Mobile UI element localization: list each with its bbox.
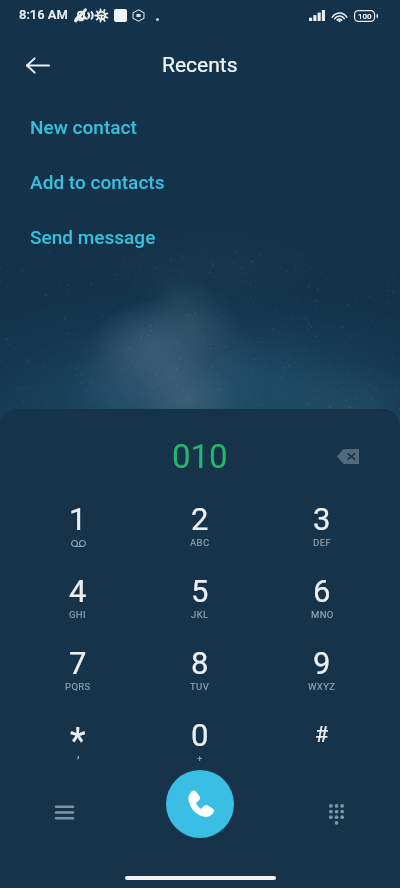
staticText: , [77,747,80,761]
staticText: Add to contacts [30,171,165,193]
staticText: # [315,722,329,747]
button[interactable]: Call [166,770,234,838]
staticText: 8 [191,645,209,681]
button[interactable]: Send message [0,209,400,264]
staticText: DEF [313,537,332,548]
button[interactable]: 7 [17,645,139,717]
staticText: ABC [190,537,210,548]
button[interactable]: New contact [0,99,400,154]
staticText: 0 [191,717,209,753]
button[interactable]: 0 [139,717,261,789]
staticText: PQRS [65,681,91,692]
staticText: 9 [313,645,331,681]
button[interactable]: 4 [17,573,139,645]
staticText: 5 [191,573,209,609]
staticText: 7 [69,645,87,681]
staticText: 6 [313,573,331,609]
staticText: 1 [69,501,87,537]
staticText: Recents [162,53,238,78]
staticText: * [70,720,86,762]
staticText: + [197,753,203,764]
staticText: GHI [69,609,87,620]
staticText: 4 [69,573,87,609]
staticText: 8:16 AM [19,7,68,22]
button[interactable]: Add to contacts [0,154,400,209]
staticText: WXYZ [308,681,336,692]
button[interactable]: 8 [139,645,261,717]
button[interactable]: * [17,717,139,789]
button[interactable]: Dialpad [314,791,358,835]
button[interactable]: 1 [17,501,139,573]
button[interactable]: 6 [261,573,383,645]
staticText: 100 [358,12,372,21]
button[interactable]: 5 [139,573,261,645]
button[interactable]: Call log [42,790,86,834]
staticText: Send message [30,226,156,248]
staticText: TUV [190,681,210,692]
button[interactable]: 2 [139,501,261,573]
button[interactable]: Backspace [326,434,370,478]
staticText: JKL [191,609,209,620]
button[interactable]: 3 [261,501,383,573]
button[interactable]: 9 [261,645,383,717]
button[interactable]: # [261,717,383,789]
button[interactable]: Back [14,41,62,89]
staticText: MNO [311,609,334,620]
staticText: New contact [30,116,137,138]
staticText: 2 [191,501,209,537]
staticText: 010 [172,437,228,476]
staticText: 3 [313,501,331,537]
